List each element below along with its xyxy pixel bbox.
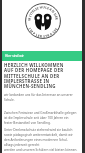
staticText: wir bedanken uns für das Interesse an un… <box>4 93 73 97</box>
staticText: Zwischen Festwiese und Großmarkthalle ge… <box>4 111 77 115</box>
staticText: MÜNCHEN-SENDLING <box>4 83 56 89</box>
staticText: alltags jederzeit gerecht <box>4 143 40 147</box>
staticText: fester Bestandteil von Sendling. <box>4 121 51 125</box>
staticText: MITTELSCHULE AN DER <box>4 73 60 79</box>
staticText: Unter Denkmalschutz stehend wird sie bau… <box>4 128 73 132</box>
staticText: den Anforderungen eines modernen Schul- <box>4 138 68 142</box>
other: Schullogo <box>25 3 61 39</box>
staticText: AUF DER HOMEPAGE DER <box>4 67 64 73</box>
staticText: Hier sind wir <box>5 54 24 58</box>
staticText: IMPLERSTRASSE IN <box>4 78 50 84</box>
staticText: ist die Implerschule seit über 100 Jahre… <box>4 116 69 120</box>
staticText: Schule. <box>4 98 15 102</box>
staticText: sowie pädagogisch weiterentwickelt, dami… <box>4 133 73 137</box>
staticText: HERZLICH WILLKOMMEN <box>4 62 64 68</box>
staticText: werden und unseren Schülern viel bieten … <box>4 148 78 152</box>
button[interactable]: Hier sind wir <box>0 51 85 61</box>
